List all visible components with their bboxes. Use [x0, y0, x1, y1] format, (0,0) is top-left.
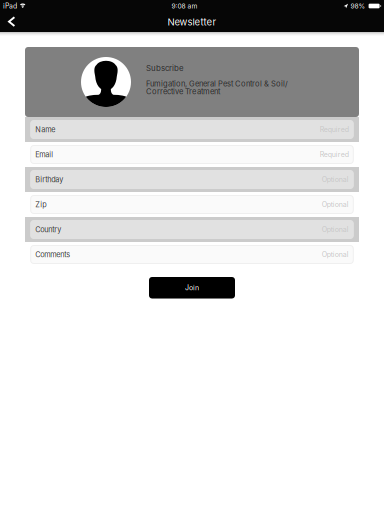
- staticText: Optional: [322, 175, 349, 184]
- staticText: Optional: [322, 250, 349, 259]
- staticText: Birthday: [35, 175, 63, 184]
- button[interactable]: Comments: [25, 242, 359, 267]
- staticText: Optional: [322, 200, 349, 209]
- button[interactable]: Join: [149, 277, 235, 298]
- button[interactable]: Back: [0, 13, 23, 31]
- staticText: Comments: [35, 250, 70, 259]
- staticText: Fumigation, General Pest Control & Soil/: [146, 79, 288, 88]
- staticText: Name: [35, 125, 55, 134]
- staticText: Email: [35, 150, 53, 159]
- button[interactable]: Email: [25, 142, 359, 167]
- staticText: Required: [320, 150, 349, 159]
- staticText: Subscribe: [146, 63, 184, 73]
- staticText: Newsletter: [167, 16, 216, 28]
- staticText: 9:08 am: [172, 2, 198, 10]
- staticText: 98%: [351, 2, 366, 10]
- staticText: Optional: [322, 225, 349, 234]
- button[interactable]: Country: [25, 217, 359, 242]
- staticText: Required: [320, 125, 349, 134]
- staticText: Zip: [35, 200, 46, 209]
- staticText: Corrective Treatment: [146, 87, 220, 96]
- staticText: Join: [185, 283, 199, 292]
- button[interactable]: Zip: [25, 192, 359, 217]
- staticText: Country: [35, 225, 61, 234]
- button[interactable]: Birthday: [25, 167, 359, 192]
- button[interactable]: Name: [25, 117, 359, 142]
- staticText: iPad: [3, 2, 17, 10]
